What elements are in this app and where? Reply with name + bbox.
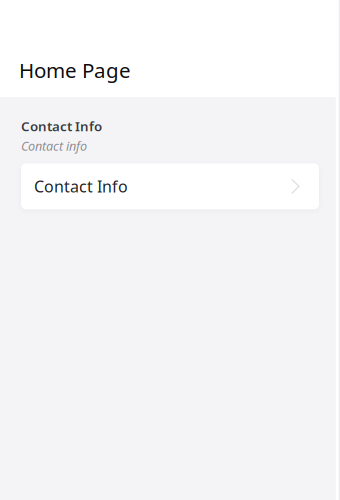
button[interactable]: Contact Info — [21, 163, 319, 209]
staticText: Contact Info — [34, 175, 128, 197]
staticText: Contact info — [21, 137, 87, 154]
staticText: Home Page — [19, 56, 131, 84]
staticText: Contact Info — [21, 117, 102, 135]
